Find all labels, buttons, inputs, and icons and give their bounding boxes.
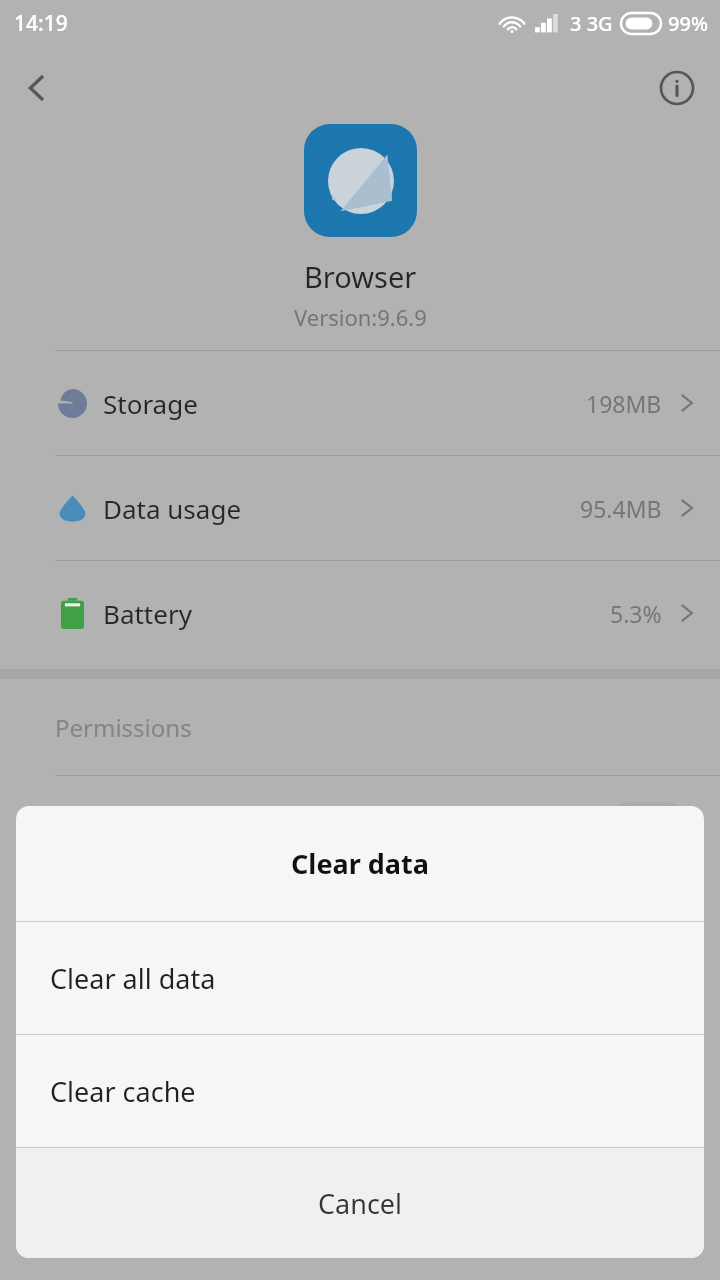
staticText: 5.3% — [610, 598, 662, 629]
button[interactable]: Permissions — [0, 679, 720, 775]
staticText: 95.4MB — [580, 493, 662, 524]
button[interactable]: Clear cache — [16, 1035, 704, 1147]
button[interactable]: App info — [648, 59, 706, 117]
staticText: Clear data — [291, 845, 429, 882]
staticText: Cancel — [318, 1185, 403, 1222]
button[interactable]: Back — [8, 59, 66, 117]
staticText: 14:19 — [14, 9, 68, 38]
button[interactable]: Battery — [0, 561, 720, 665]
staticText: Storage — [103, 386, 586, 421]
staticText: Version:9.6.9 — [294, 302, 427, 332]
staticText: Permissions — [55, 711, 192, 744]
button[interactable]: Clear all data — [16, 922, 704, 1034]
staticText: 198MB — [586, 388, 662, 419]
button[interactable]: Data usage — [0, 456, 720, 560]
staticText: 99% — [668, 10, 708, 37]
staticText: Battery — [103, 596, 610, 631]
staticText: Clear cache — [50, 1073, 196, 1110]
staticText: Clear all data — [50, 960, 216, 997]
button[interactable]: Storage — [0, 351, 720, 455]
button[interactable]: Cancel — [16, 1148, 704, 1258]
staticText: Data usage — [103, 491, 580, 526]
staticText: 3 3G — [570, 10, 613, 37]
staticText: Browser — [304, 257, 417, 296]
button[interactable]: Autostart — [0, 776, 720, 880]
